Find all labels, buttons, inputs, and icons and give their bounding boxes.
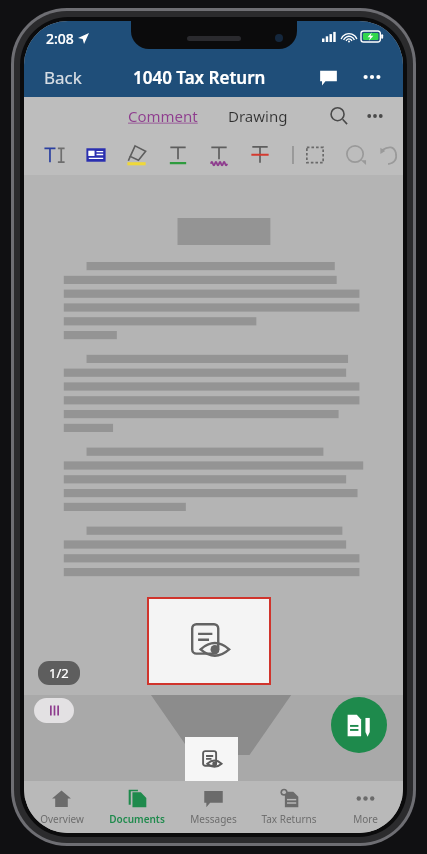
button[interactable]: Document preview [149,599,269,683]
button[interactable]: Text cursor [34,135,75,175]
staticText: Messages [190,812,237,826]
button[interactable]: Edit document [331,697,387,753]
staticText: 1/2 [49,664,69,682]
button[interactable]: 1/2 [38,661,80,685]
button[interactable]: Messages [175,784,251,830]
button[interactable]: More [361,102,389,130]
staticText: Comment [128,106,198,126]
staticText: Back [44,66,82,89]
staticText: 2:08 [46,29,74,48]
button[interactable]: Page thumbnail [185,737,238,781]
button[interactable]: Documents [99,784,175,830]
button[interactable]: Drawing [224,106,292,126]
button[interactable]: Search [325,102,353,130]
button[interactable]: More [327,784,403,830]
staticText: Overview [40,812,84,826]
staticText: Drawing [228,106,288,126]
staticText: Documents [109,812,165,826]
button[interactable]: Shape [335,135,376,175]
button[interactable]: Note [75,135,116,175]
button[interactable]: Tax Returns [251,784,327,830]
button[interactable]: More options [357,62,387,92]
button[interactable]: Highlight [116,135,157,175]
staticText: More [353,812,378,826]
button[interactable]: Comment [124,106,202,126]
staticText: 1040 Tax Return [133,66,266,89]
button[interactable]: Select area [294,135,335,175]
button[interactable]: Page thumbnails [34,698,74,723]
button[interactable]: Underline [157,135,198,175]
button[interactable]: Squiggly [198,135,239,175]
button[interactable]: Strikethrough [239,135,280,175]
staticText: Tax Returns [261,812,317,826]
button[interactable]: Overview [24,784,99,830]
button[interactable]: Comments [313,62,343,92]
button[interactable]: Back [40,62,86,93]
button[interactable]: Undo [376,135,403,175]
